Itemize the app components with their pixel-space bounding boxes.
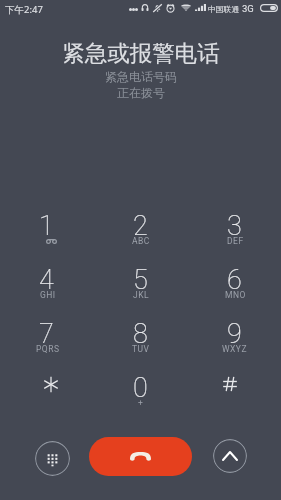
staticText: JKL [133,290,150,300]
staticText: + [138,398,144,408]
button[interactable]: 3 [187,209,281,263]
staticText: 中国联通 [208,4,240,14]
button[interactable]: 0 [93,371,187,425]
staticText: TUV [132,344,150,354]
staticText: PQRS [36,344,60,354]
staticText: 下午2:47 [5,3,43,16]
button[interactable]: 9 [187,317,281,371]
button[interactable]: 8 [93,317,187,371]
staticText: 4 [39,264,54,296]
button[interactable]: End call [89,437,192,476]
button[interactable]: 7 [0,317,93,371]
button[interactable] [187,371,281,425]
staticText: MNO [225,290,246,300]
staticText: 9 [227,318,242,350]
staticText: 7 [39,318,54,350]
staticText: 3G [242,3,254,14]
staticText: 3 [227,210,242,242]
button[interactable]: 2 [93,209,187,263]
button[interactable] [0,371,93,425]
staticText: 6 [227,264,242,296]
staticText: 正在拨号 [117,85,165,100]
staticText: 0 [133,372,148,404]
staticText: 2 [133,210,148,242]
staticText: 8 [133,318,148,350]
staticText: ABC [132,236,150,246]
staticText: 5 [133,264,148,296]
staticText: 紧急电话号码 [105,69,177,84]
staticText: WXYZ [222,344,248,354]
staticText: DEF [227,236,244,246]
staticText: 紧急或报警电话 [62,39,220,67]
button[interactable]: Show dialpad [35,441,70,476]
button[interactable]: 4 [0,263,93,317]
staticText: 1 [39,210,54,242]
button[interactable]: 1 [0,209,93,263]
button[interactable]: 6 [187,263,281,317]
button[interactable]: Expand [213,439,247,473]
staticText: GHI [40,290,56,300]
button[interactable]: 5 [93,263,187,317]
